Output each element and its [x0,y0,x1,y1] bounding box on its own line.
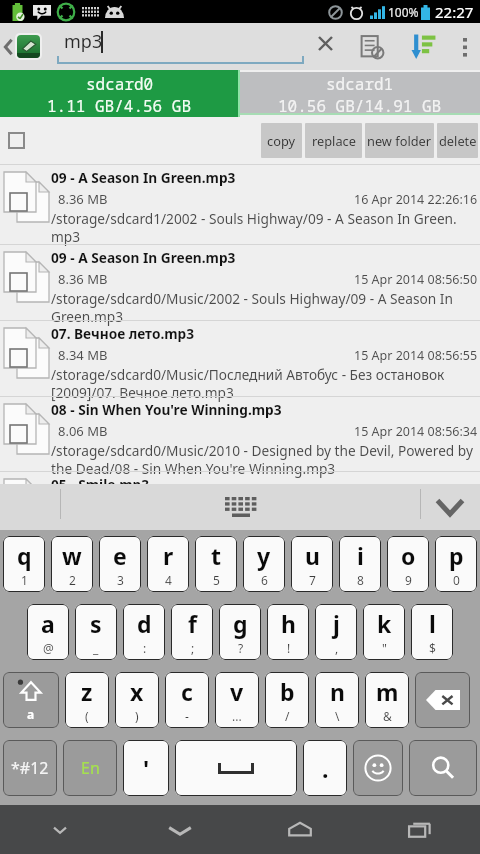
staticText: 15 Apr 2014 08:56:55 [354,347,478,364]
button[interactable]: f [171,604,213,660]
staticText: h [281,608,296,639]
staticText: s [90,608,102,639]
staticText: *#12 [11,757,49,779]
button[interactable]: 05 - Smile.mp3 [0,471,480,484]
button[interactable]: *#12 [3,740,57,796]
button[interactable]: Back [120,805,240,854]
staticText: ' [143,753,150,784]
staticText: 08 - Sin When You're Winning.mp3 [51,400,282,419]
staticText: , [335,640,339,656]
staticText: 16 Apr 2014 22:26:16 [354,191,478,208]
button[interactable]: Home [240,805,360,854]
button[interactable]: sdcard1 [240,72,480,115]
staticText: : [143,640,147,656]
button[interactable]: x [115,672,159,728]
staticText: mp3 [64,29,103,54]
staticText: 8.06 MB [58,422,108,440]
staticText: 15 Apr 2014 08:56:50 [354,271,478,288]
button[interactable]: e [99,536,141,592]
staticText: 8 [357,572,364,588]
staticText: m [376,676,399,707]
button[interactable]: . [303,740,347,796]
button[interactable]: w [51,536,93,592]
button[interactable]: ' [123,740,169,796]
button[interactable]: j [315,604,357,660]
button[interactable]: b [265,672,309,728]
button[interactable]: s [75,604,117,660]
staticText: y [257,540,271,571]
staticText: t [211,540,221,571]
staticText: copy [267,132,296,149]
staticText: - [185,708,189,724]
button[interactable]: u [291,536,333,592]
button[interactable]: h [267,604,309,660]
button[interactable]: replace [305,123,362,158]
button[interactable]: new folder [365,123,434,158]
staticText: 6 [261,572,268,588]
button[interactable]: Backspace [415,672,470,728]
button[interactable]: i [339,536,381,592]
button[interactable]: g [219,604,261,660]
button[interactable]: Emoji [353,740,403,796]
staticText: r [163,540,174,571]
button[interactable]: v [215,672,259,728]
button[interactable]: delete [437,123,478,158]
button[interactable]: More options [450,23,480,70]
staticText: p [449,540,464,571]
button[interactable]: a [27,604,69,660]
staticText: d [137,608,152,639]
button[interactable]: o [387,536,429,592]
button[interactable]: d [123,604,165,660]
staticText: delete [439,132,477,149]
button[interactable]: En [63,740,117,796]
staticText: b [280,676,295,707]
button[interactable]: m [365,672,409,728]
button[interactable]: Recents [360,805,480,854]
button[interactable]: t [195,536,237,592]
staticText: k [377,608,392,639]
button[interactable]: p [435,536,477,592]
staticText: f [188,608,197,639]
staticText: 8.36 MB [58,270,108,288]
button[interactable]: c [165,672,209,728]
staticText: ! [287,640,291,656]
staticText: a [41,608,55,639]
button[interactable]: k [363,604,405,660]
button[interactable]: Edit [346,23,398,70]
staticText: 1 [21,572,28,588]
button[interactable]: sdcard0 [0,70,238,117]
staticText: /storage/sdcard1/2002 - Souls Highway/09… [51,209,474,246]
button[interactable]: Keyboard settings [215,493,267,521]
staticText: 15 Apr 2014 08:56:34 [354,423,478,440]
button[interactable]: Search [409,740,477,796]
button[interactable]: File manager [17,35,40,58]
button[interactable]: z [65,672,109,728]
staticText: x [130,676,144,707]
staticText: 05 - Smile.mp3 [51,475,150,488]
button[interactable]: copy [261,123,302,158]
button[interactable]: Up [0,23,16,70]
button[interactable]: Hide keyboard [0,805,120,854]
button[interactable]: 07. Вечное лето.mp3 [0,320,480,396]
button[interactable]: 09 - A Season In Green.mp3 [0,244,480,320]
button[interactable]: r [147,536,189,592]
staticText: sdcard0 [86,73,154,95]
button[interactable]: 09 - A Season In Green.mp3 [0,164,480,244]
staticText: . [322,753,329,784]
button[interactable]: y [243,536,285,592]
button[interactable]: Shift [3,672,59,728]
button[interactable]: q [3,536,45,592]
staticText: 09 - A Season In Green.mp3 [51,248,236,267]
button[interactable]: Hide keyboard [430,491,470,523]
staticText: new folder [367,132,432,149]
staticText: 2 [69,572,76,588]
button[interactable]: l [411,604,453,660]
button[interactable]: Select all [8,132,25,149]
staticText: ; [191,640,195,656]
button[interactable]: n [315,672,359,728]
button[interactable]: Space [175,740,297,796]
button[interactable]: Clear [304,23,346,70]
button[interactable]: 08 - Sin When You're Winning.mp3 [0,396,480,471]
button[interactable]: Sort [398,23,450,70]
staticText: j [333,608,340,639]
